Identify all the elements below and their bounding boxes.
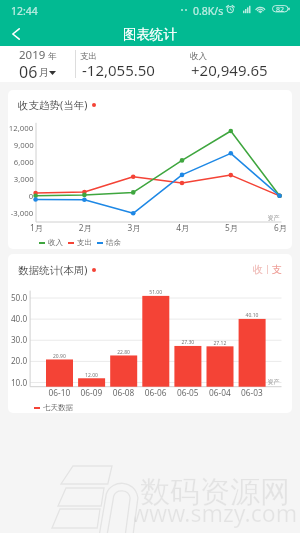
staticText: 06 [19, 61, 38, 83]
staticText: 图表统计 [123, 26, 177, 43]
staticText: 七天数据 [43, 403, 73, 412]
staticText: 收 [253, 263, 263, 276]
button[interactable]: Back [0, 22, 32, 46]
button[interactable]: 支 [272, 263, 282, 276]
staticText: 2019 [19, 47, 46, 63]
staticText: 收支趋势(当年) [18, 98, 88, 112]
staticText: 收入 [190, 51, 207, 62]
staticText: 收入 [48, 238, 63, 247]
staticText: 支出 [77, 238, 92, 247]
staticText: -12,055.50 [82, 60, 155, 80]
staticText: 12:44 [11, 4, 38, 18]
staticText: 年 [48, 51, 57, 62]
staticText: +20,949.65 [191, 60, 268, 80]
staticText: 82 [276, 5, 285, 13]
button[interactable]: 收 [253, 263, 263, 276]
staticText: 支 [272, 263, 282, 276]
staticText: 月 [39, 66, 49, 79]
staticText: 数据统计(本周) [18, 263, 88, 277]
staticText: 结余 [106, 238, 121, 247]
staticText: 0.8K/s [193, 4, 224, 18]
staticText: 支出 [80, 51, 97, 62]
button[interactable]: 2019 [0, 46, 60, 82]
